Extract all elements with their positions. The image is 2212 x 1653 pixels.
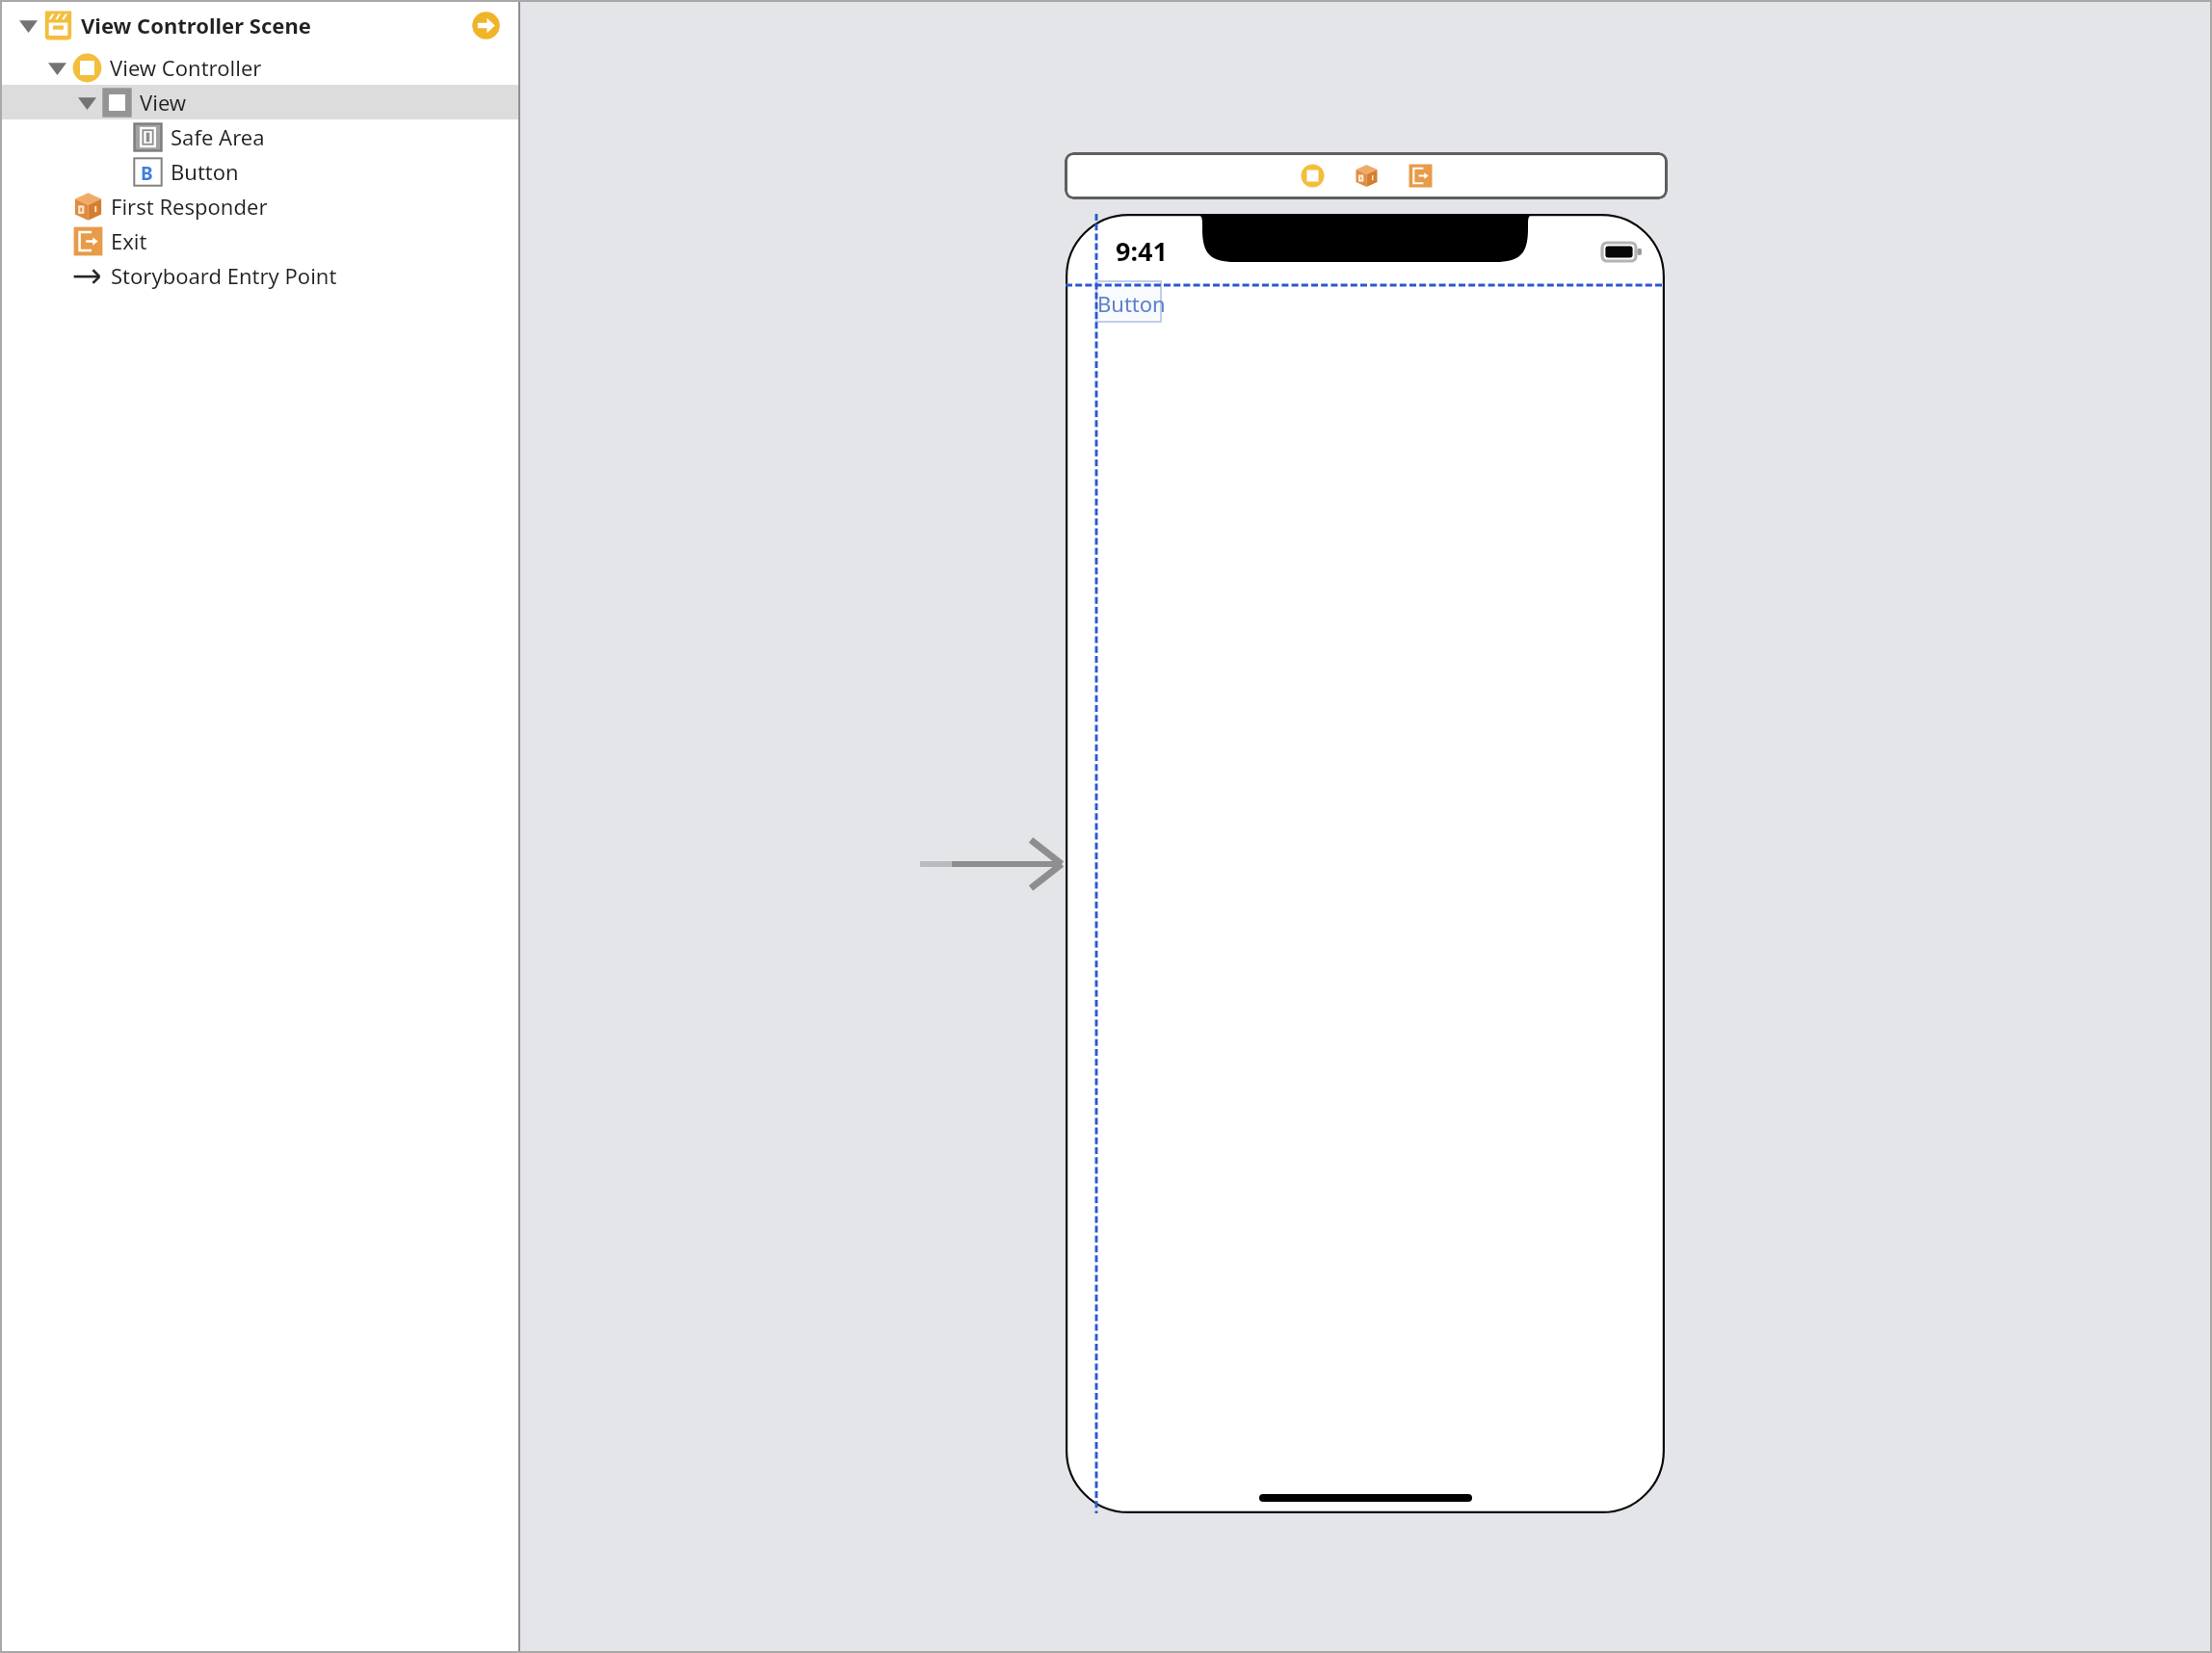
staticText: Button xyxy=(1097,289,1166,318)
button[interactable]: First Responder xyxy=(1355,164,1379,188)
staticText: 9:41 xyxy=(1116,233,1168,269)
staticText: Storyboard Entry Point xyxy=(111,261,337,290)
staticText: View Controller xyxy=(110,53,262,82)
button[interactable]: View Controller xyxy=(1065,152,1668,199)
button[interactable] xyxy=(1095,280,1162,323)
staticText: Button xyxy=(171,157,239,186)
button[interactable]: View Controller xyxy=(0,50,518,85)
button[interactable]: Safe Area xyxy=(0,119,518,154)
button[interactable]: Storyboard Entry Point xyxy=(0,258,518,293)
staticText: View xyxy=(140,88,187,117)
button[interactable]: Exit xyxy=(1409,164,1433,188)
button[interactable]: View Controller xyxy=(1301,164,1325,188)
staticText: Safe Area xyxy=(171,122,265,151)
button[interactable]: First Responder xyxy=(0,189,518,223)
button[interactable]: View Controller Scene xyxy=(0,8,518,42)
button[interactable]: View xyxy=(0,85,518,119)
button[interactable]: Go to scene xyxy=(471,11,501,40)
staticText: Exit xyxy=(111,226,147,255)
staticText: B xyxy=(141,161,153,186)
button[interactable]: B xyxy=(0,154,518,189)
staticText: View Controller Scene xyxy=(81,11,311,39)
button[interactable]: Exit xyxy=(0,223,518,258)
staticText: First Responder xyxy=(111,192,268,221)
